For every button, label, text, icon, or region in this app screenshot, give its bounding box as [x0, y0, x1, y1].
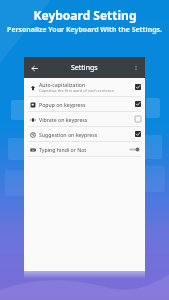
button[interactable]: More options: [130, 62, 142, 74]
button[interactable]: Popup on keypress: [24, 97, 145, 112]
staticText: Settings: [71, 63, 98, 73]
button[interactable]: Auto-capitalization: [24, 78, 145, 97]
staticText: Popup on keypress: [39, 101, 86, 108]
staticText: Capitalize the first word of each senten…: [39, 88, 115, 93]
button[interactable]: Typing hindi or Not: [24, 142, 145, 157]
staticText: Personalize Your Keyboard With the Setti…: [7, 25, 162, 34]
staticText: Auto-capitalization: [39, 81, 86, 88]
staticText: Keyboard Setting: [33, 7, 137, 23]
button[interactable]: Vibrate on keypress: [24, 112, 145, 127]
button[interactable]: Back: [27, 61, 41, 75]
button[interactable]: Suggestion on keypress: [24, 127, 145, 142]
staticText: Suggestion on keypress: [39, 131, 98, 138]
staticText: Typing hindi or Not: [39, 146, 87, 153]
staticText: Vibrate on keypress: [39, 116, 88, 123]
